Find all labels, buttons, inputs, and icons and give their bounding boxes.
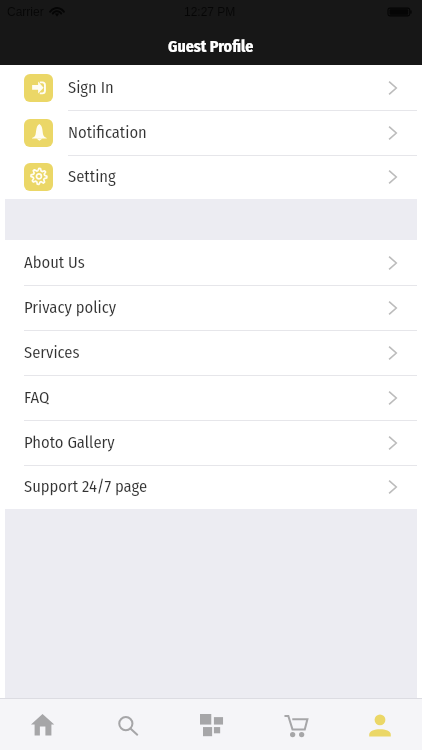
staticText: Sign In — [68, 78, 114, 98]
button[interactable]: Services — [0, 330, 422, 375]
button[interactable]: Setting — [0, 155, 422, 199]
button[interactable]: Photo Gallery — [0, 420, 422, 465]
button[interactable]: Dashboard — [170, 699, 254, 750]
button[interactable]: About Us — [0, 240, 422, 285]
staticText: 12:27 PM — [184, 5, 236, 18]
button[interactable]: Support 24/7 page — [0, 465, 422, 509]
button[interactable]: Profile — [338, 699, 422, 750]
staticText: Setting — [68, 167, 116, 187]
button[interactable]: Home — [0, 699, 85, 750]
button[interactable]: Privacy policy — [0, 285, 422, 330]
button[interactable]: Search — [85, 699, 170, 750]
button[interactable]: Sign In — [0, 65, 422, 110]
staticText: Notification — [68, 123, 147, 143]
button[interactable]: Notification — [0, 110, 422, 155]
button[interactable]: FAQ — [0, 375, 422, 420]
staticText: Privacy policy — [24, 298, 117, 318]
staticText: Carrier — [7, 5, 44, 18]
staticText: FAQ — [24, 388, 50, 408]
staticText: Photo Gallery — [24, 433, 115, 453]
staticText: Support 24/7 page — [24, 477, 148, 497]
staticText: Guest Profile — [168, 37, 254, 56]
button[interactable]: Cart — [254, 699, 338, 750]
staticText: About Us — [24, 253, 85, 273]
staticText: Services — [24, 343, 80, 363]
